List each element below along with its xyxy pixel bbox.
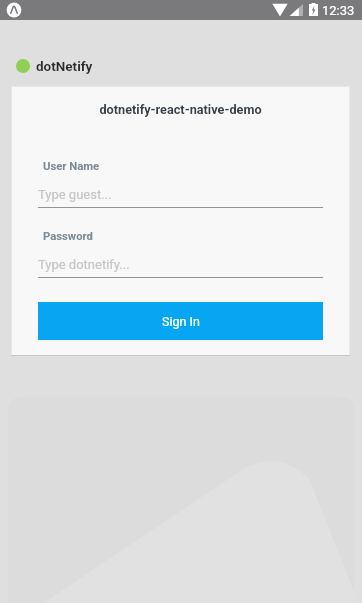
other: Notification — [4, 0, 24, 20]
button[interactable]: Type guest... — [38, 187, 323, 208]
staticText: Type dotnetify... — [38, 257, 130, 272]
staticText: 12:33 — [322, 3, 355, 18]
staticText: Type guest... — [38, 187, 112, 202]
staticText: Password — [43, 230, 93, 243]
button[interactable]: Sign In — [38, 302, 323, 340]
staticText: Sign In — [162, 314, 200, 329]
staticText: dotnetify-react-native-demo — [38, 102, 323, 117]
button[interactable]: Type dotnetify... — [38, 257, 323, 278]
staticText: dotNetify — [36, 58, 93, 74]
staticText: User Name — [43, 160, 100, 173]
